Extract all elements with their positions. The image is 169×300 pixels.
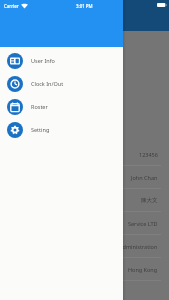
- button[interactable]: Setting: [0, 118, 123, 141]
- staticText: Clock In/Out: [31, 80, 64, 87]
- button[interactable]: Roster: [0, 95, 123, 118]
- staticText: John Chan: [131, 174, 158, 181]
- staticText: Hong Kong: [128, 266, 158, 273]
- staticText: User Info: [31, 57, 55, 64]
- staticText: Roster: [31, 103, 48, 110]
- staticText: 123456: [139, 151, 158, 158]
- staticText: 3:01 PM: [76, 3, 93, 9]
- button[interactable]: Clock In/Out: [0, 72, 123, 95]
- button[interactable]: User Info: [0, 49, 123, 72]
- staticText: Carrier: [4, 3, 19, 9]
- staticText: Administration: [119, 243, 158, 250]
- staticText: 陳大文: [141, 197, 158, 204]
- other: Battery: [157, 3, 167, 7]
- staticText: Setting: [31, 126, 50, 133]
- staticText: Service LTD: [128, 220, 158, 227]
